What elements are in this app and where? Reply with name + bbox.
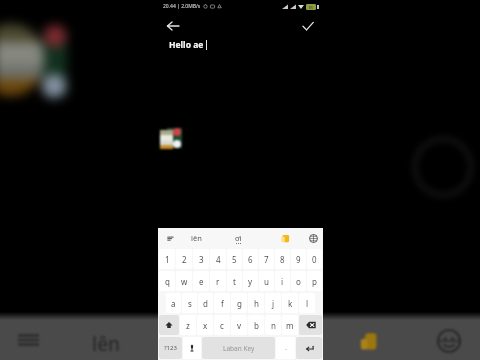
staticText: q	[165, 276, 170, 287]
staticText: u	[264, 276, 269, 287]
button[interactable]: 1	[159, 249, 175, 269]
staticText: c	[220, 320, 224, 331]
button[interactable]: 2	[176, 249, 192, 269]
staticText: e	[199, 276, 204, 287]
button[interactable]: e	[193, 271, 209, 291]
button[interactable]: b	[248, 315, 264, 335]
button[interactable]: w	[176, 271, 192, 291]
button[interactable]: 5	[227, 249, 242, 269]
button[interactable]: 3	[193, 249, 209, 269]
button[interactable]: Laban Key	[202, 337, 275, 359]
button[interactable]: n	[265, 315, 281, 335]
button[interactable]: y	[243, 271, 258, 291]
button[interactable]: u	[259, 271, 274, 291]
staticText: 6	[248, 254, 253, 265]
button[interactable]: Emoji	[305, 228, 321, 248]
staticText: f	[221, 298, 224, 309]
button[interactable]: 7	[259, 249, 274, 269]
staticText: 20.44 | 2.0MB/s	[163, 3, 201, 10]
button[interactable]: m	[282, 315, 298, 335]
button[interactable]: l	[299, 293, 315, 313]
button[interactable]: 0	[307, 249, 322, 269]
button[interactable]: Menu	[161, 228, 179, 248]
staticText: 0	[312, 254, 317, 265]
staticText: lên	[191, 233, 202, 243]
staticText: 85	[309, 5, 314, 10]
staticText: s	[188, 298, 192, 309]
button[interactable]: f	[214, 293, 230, 313]
staticText: b	[254, 320, 259, 331]
button[interactable]: t	[227, 271, 242, 291]
staticText: j	[272, 298, 275, 309]
staticText: 2	[182, 254, 187, 265]
button[interactable]: Backspace	[299, 315, 322, 335]
staticText: p	[312, 276, 317, 287]
staticText: 7	[264, 254, 269, 265]
staticText: y	[248, 276, 253, 287]
staticText: w	[181, 276, 188, 287]
button[interactable]: ?123	[159, 337, 182, 359]
staticText: .	[285, 343, 287, 353]
staticText: 8	[280, 254, 285, 265]
button[interactable]: a	[166, 293, 181, 313]
button[interactable]: Stickers	[276, 228, 294, 248]
button[interactable]: i	[275, 271, 290, 291]
button[interactable]: c	[214, 315, 230, 335]
staticText: v	[237, 320, 242, 331]
button[interactable]: 4	[210, 249, 226, 269]
button[interactable]: Enter	[296, 337, 322, 359]
button[interactable]: 6	[243, 249, 258, 269]
button[interactable]: d	[198, 293, 213, 313]
button[interactable]: j	[265, 293, 281, 313]
staticText: z	[186, 320, 190, 331]
staticText: 5	[232, 254, 237, 265]
staticText: lên	[92, 331, 120, 357]
staticText: Laban Key	[223, 344, 255, 353]
button[interactable]: h	[248, 293, 264, 313]
button[interactable]: Emoji keyboard	[436, 328, 462, 354]
button[interactable]: Shift	[159, 315, 179, 335]
staticText: 4	[216, 254, 221, 265]
staticText: k	[288, 298, 293, 309]
staticText: n	[271, 320, 276, 331]
button[interactable]: z	[180, 315, 196, 335]
staticText: 3	[199, 254, 204, 265]
button[interactable]: Back	[163, 16, 183, 36]
button[interactable]: x	[197, 315, 213, 335]
staticText: d	[203, 298, 208, 309]
staticText: Hello ae	[169, 39, 204, 51]
button[interactable]: k	[282, 293, 298, 313]
staticText: h	[254, 298, 259, 309]
staticText: l	[306, 298, 309, 309]
button[interactable]: g	[231, 293, 247, 313]
staticText: ?123	[164, 344, 177, 352]
button[interactable]: ơi	[224, 228, 252, 248]
staticText: g	[237, 298, 242, 309]
staticText: t	[233, 276, 236, 287]
staticText: 9	[296, 254, 301, 265]
staticText: 1	[165, 254, 170, 265]
staticText: a	[171, 298, 176, 309]
button[interactable]: r	[210, 271, 226, 291]
button[interactable]: 8	[275, 249, 290, 269]
staticText: x	[203, 320, 208, 331]
button[interactable]: o	[291, 271, 306, 291]
button[interactable]: s	[182, 293, 197, 313]
staticText: r	[216, 276, 220, 287]
button[interactable]: Done	[298, 16, 318, 36]
button[interactable]: p	[307, 271, 322, 291]
button[interactable]: q	[159, 271, 175, 291]
staticText: ơi	[235, 233, 242, 243]
button[interactable]: 9	[291, 249, 306, 269]
staticText: i	[281, 276, 284, 287]
staticText: m	[286, 320, 294, 331]
button[interactable]: v	[231, 315, 247, 335]
button[interactable]: Voice input	[183, 337, 201, 359]
button[interactable]: lên	[182, 228, 210, 248]
staticText: o	[296, 276, 301, 287]
